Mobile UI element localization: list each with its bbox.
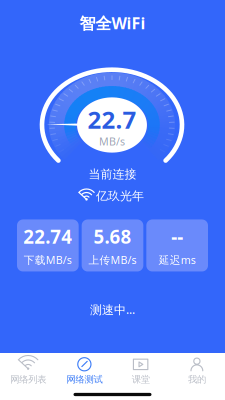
- staticText: 课堂: [132, 374, 150, 385]
- staticText: 22.74: [23, 224, 72, 249]
- button[interactable]: 我的: [169, 353, 225, 389]
- button[interactable]: 5.68: [82, 219, 143, 271]
- button[interactable]: 22.74: [17, 219, 79, 271]
- button[interactable]: 课堂: [112, 353, 169, 389]
- staticText: --: [171, 224, 183, 249]
- button[interactable]: --: [146, 219, 208, 271]
- staticText: 上传MB/s: [88, 253, 136, 267]
- staticText: 延迟ms: [159, 253, 196, 267]
- staticText: 5.68: [93, 224, 131, 249]
- button[interactable]: 网络测试: [56, 353, 112, 389]
- staticText: MB/s: [99, 134, 125, 149]
- staticText: 测速中...: [90, 301, 135, 317]
- staticText: 下载MB/s: [24, 253, 72, 267]
- staticText: 亿玖光年: [96, 189, 144, 203]
- staticText: 网络列表: [10, 374, 46, 385]
- staticText: 智全WiFi: [79, 12, 145, 34]
- staticText: 当前连接: [88, 167, 136, 182]
- button[interactable]: 网络列表: [0, 353, 56, 389]
- staticText: 我的: [188, 374, 206, 385]
- staticText: 22.7: [87, 103, 136, 135]
- staticText: 网络测试: [66, 374, 102, 385]
